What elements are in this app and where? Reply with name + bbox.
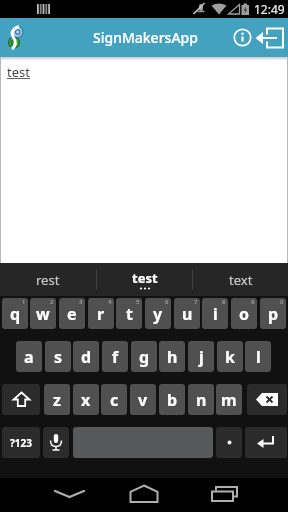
button[interactable]: q: [2, 298, 28, 329]
button[interactable]: [245, 427, 287, 458]
button[interactable]: p: [260, 298, 286, 329]
button[interactable]: t: [116, 298, 142, 329]
staticText: f: [112, 346, 119, 368]
staticText: v: [138, 389, 148, 411]
button[interactable]: test: [1, 57, 287, 263]
button[interactable]: s: [45, 341, 71, 372]
staticText: 8: [222, 298, 226, 306]
button[interactable]: c: [101, 384, 127, 415]
staticText: c: [110, 389, 119, 411]
button[interactable]: [192, 478, 288, 512]
staticText: x: [81, 389, 91, 411]
button[interactable]: u: [174, 298, 200, 329]
button[interactable]: f: [102, 341, 128, 372]
staticText: g: [139, 346, 150, 368]
staticText: 2: [50, 298, 54, 306]
staticText: y: [153, 303, 163, 325]
button[interactable]: m: [216, 384, 242, 415]
staticText: 6: [165, 298, 169, 306]
button[interactable]: g: [131, 341, 157, 372]
staticText: 4: [108, 298, 112, 306]
button[interactable]: y: [145, 298, 171, 329]
staticText: u: [182, 303, 193, 325]
button[interactable]: [0, 478, 96, 512]
button[interactable]: [43, 427, 69, 458]
staticText: p: [268, 303, 279, 325]
button[interactable]: ?123: [2, 427, 40, 458]
button[interactable]: w: [30, 298, 56, 329]
button[interactable]: [216, 427, 242, 458]
button[interactable]: o: [231, 298, 257, 329]
staticText: w: [36, 303, 50, 325]
staticText: i: [213, 303, 218, 325]
staticText: s: [54, 346, 63, 368]
button[interactable]: n: [188, 384, 214, 415]
button[interactable]: b: [159, 384, 185, 415]
staticText: n: [196, 389, 207, 411]
staticText: SignMakersApp: [93, 28, 198, 47]
staticText: b: [167, 389, 178, 411]
button[interactable]: [96, 478, 192, 512]
staticText: test: [132, 269, 158, 287]
staticText: k: [225, 346, 235, 368]
button[interactable]: [254, 26, 285, 50]
button[interactable]: e: [59, 298, 85, 329]
staticText: 9: [251, 298, 255, 306]
button[interactable]: x: [73, 384, 99, 415]
button[interactable]: [2, 384, 40, 415]
staticText: 0: [280, 298, 284, 306]
button[interactable]: [232, 27, 253, 48]
button[interactable]: l: [245, 341, 271, 372]
staticText: t: [126, 303, 133, 325]
staticText: a: [24, 346, 34, 368]
staticText: 3: [79, 298, 83, 306]
staticText: 7: [194, 298, 198, 306]
staticText: l: [256, 346, 261, 368]
button[interactable]: d: [73, 341, 99, 372]
staticText: r: [97, 303, 105, 325]
button[interactable]: h: [159, 341, 185, 372]
staticText: q: [10, 303, 21, 325]
button[interactable]: j: [188, 341, 214, 372]
staticText: ?123: [10, 436, 32, 450]
staticText: o: [239, 303, 250, 325]
staticText: e: [67, 303, 77, 325]
staticText: h: [167, 346, 178, 368]
staticText: d: [81, 346, 92, 368]
staticText: text: [229, 271, 253, 289]
staticText: rest: [36, 271, 60, 289]
staticText: 5: [136, 298, 140, 306]
button[interactable]: test: [97, 263, 192, 296]
button[interactable]: k: [217, 341, 243, 372]
staticText: test: [7, 63, 30, 81]
button[interactable]: r: [88, 298, 114, 329]
staticText: m: [221, 389, 237, 411]
button[interactable]: z: [44, 384, 70, 415]
button[interactable]: a: [16, 341, 42, 372]
button[interactable]: [247, 384, 287, 415]
button[interactable]: v: [130, 384, 156, 415]
staticText: 1: [22, 298, 26, 306]
button[interactable]: i: [202, 298, 228, 329]
staticText: j: [199, 346, 204, 368]
staticText: z: [53, 389, 61, 411]
button[interactable]: text: [193, 263, 288, 296]
button[interactable]: rest: [0, 263, 96, 296]
staticText: 12:49: [254, 1, 285, 17]
